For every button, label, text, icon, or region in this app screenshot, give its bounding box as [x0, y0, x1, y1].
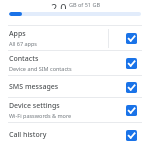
staticText: SMS messages	[9, 82, 59, 92]
staticText: All 67 apps	[9, 40, 37, 47]
button[interactable]: Call history checkbox, checked	[121, 125, 141, 145]
button[interactable]: Device settings	[0, 98, 150, 122]
staticText: Wi-Fi passwords & more	[9, 112, 72, 119]
button[interactable]: Apps checkbox, checked	[121, 28, 141, 48]
staticText: 2,0	[51, 0, 67, 9]
button[interactable]: Device settings checkbox, checked	[121, 100, 141, 120]
staticText: Call history	[9, 130, 47, 140]
button[interactable]: Contacts checkbox, checked	[121, 53, 141, 73]
button[interactable]: Call history	[0, 123, 150, 147]
staticText: Contacts	[9, 54, 39, 64]
button[interactable]: SMS messages	[0, 76, 150, 97]
button[interactable]: SMS messages checkbox, checked	[121, 77, 141, 97]
staticText: Apps	[9, 29, 26, 39]
staticText: Device settings	[9, 101, 60, 111]
button[interactable]: Apps	[0, 26, 150, 50]
staticText: Device and SIM contacts	[9, 65, 72, 72]
button[interactable]: Contacts	[0, 51, 150, 75]
staticText: GB of 51 GB	[69, 1, 100, 8]
